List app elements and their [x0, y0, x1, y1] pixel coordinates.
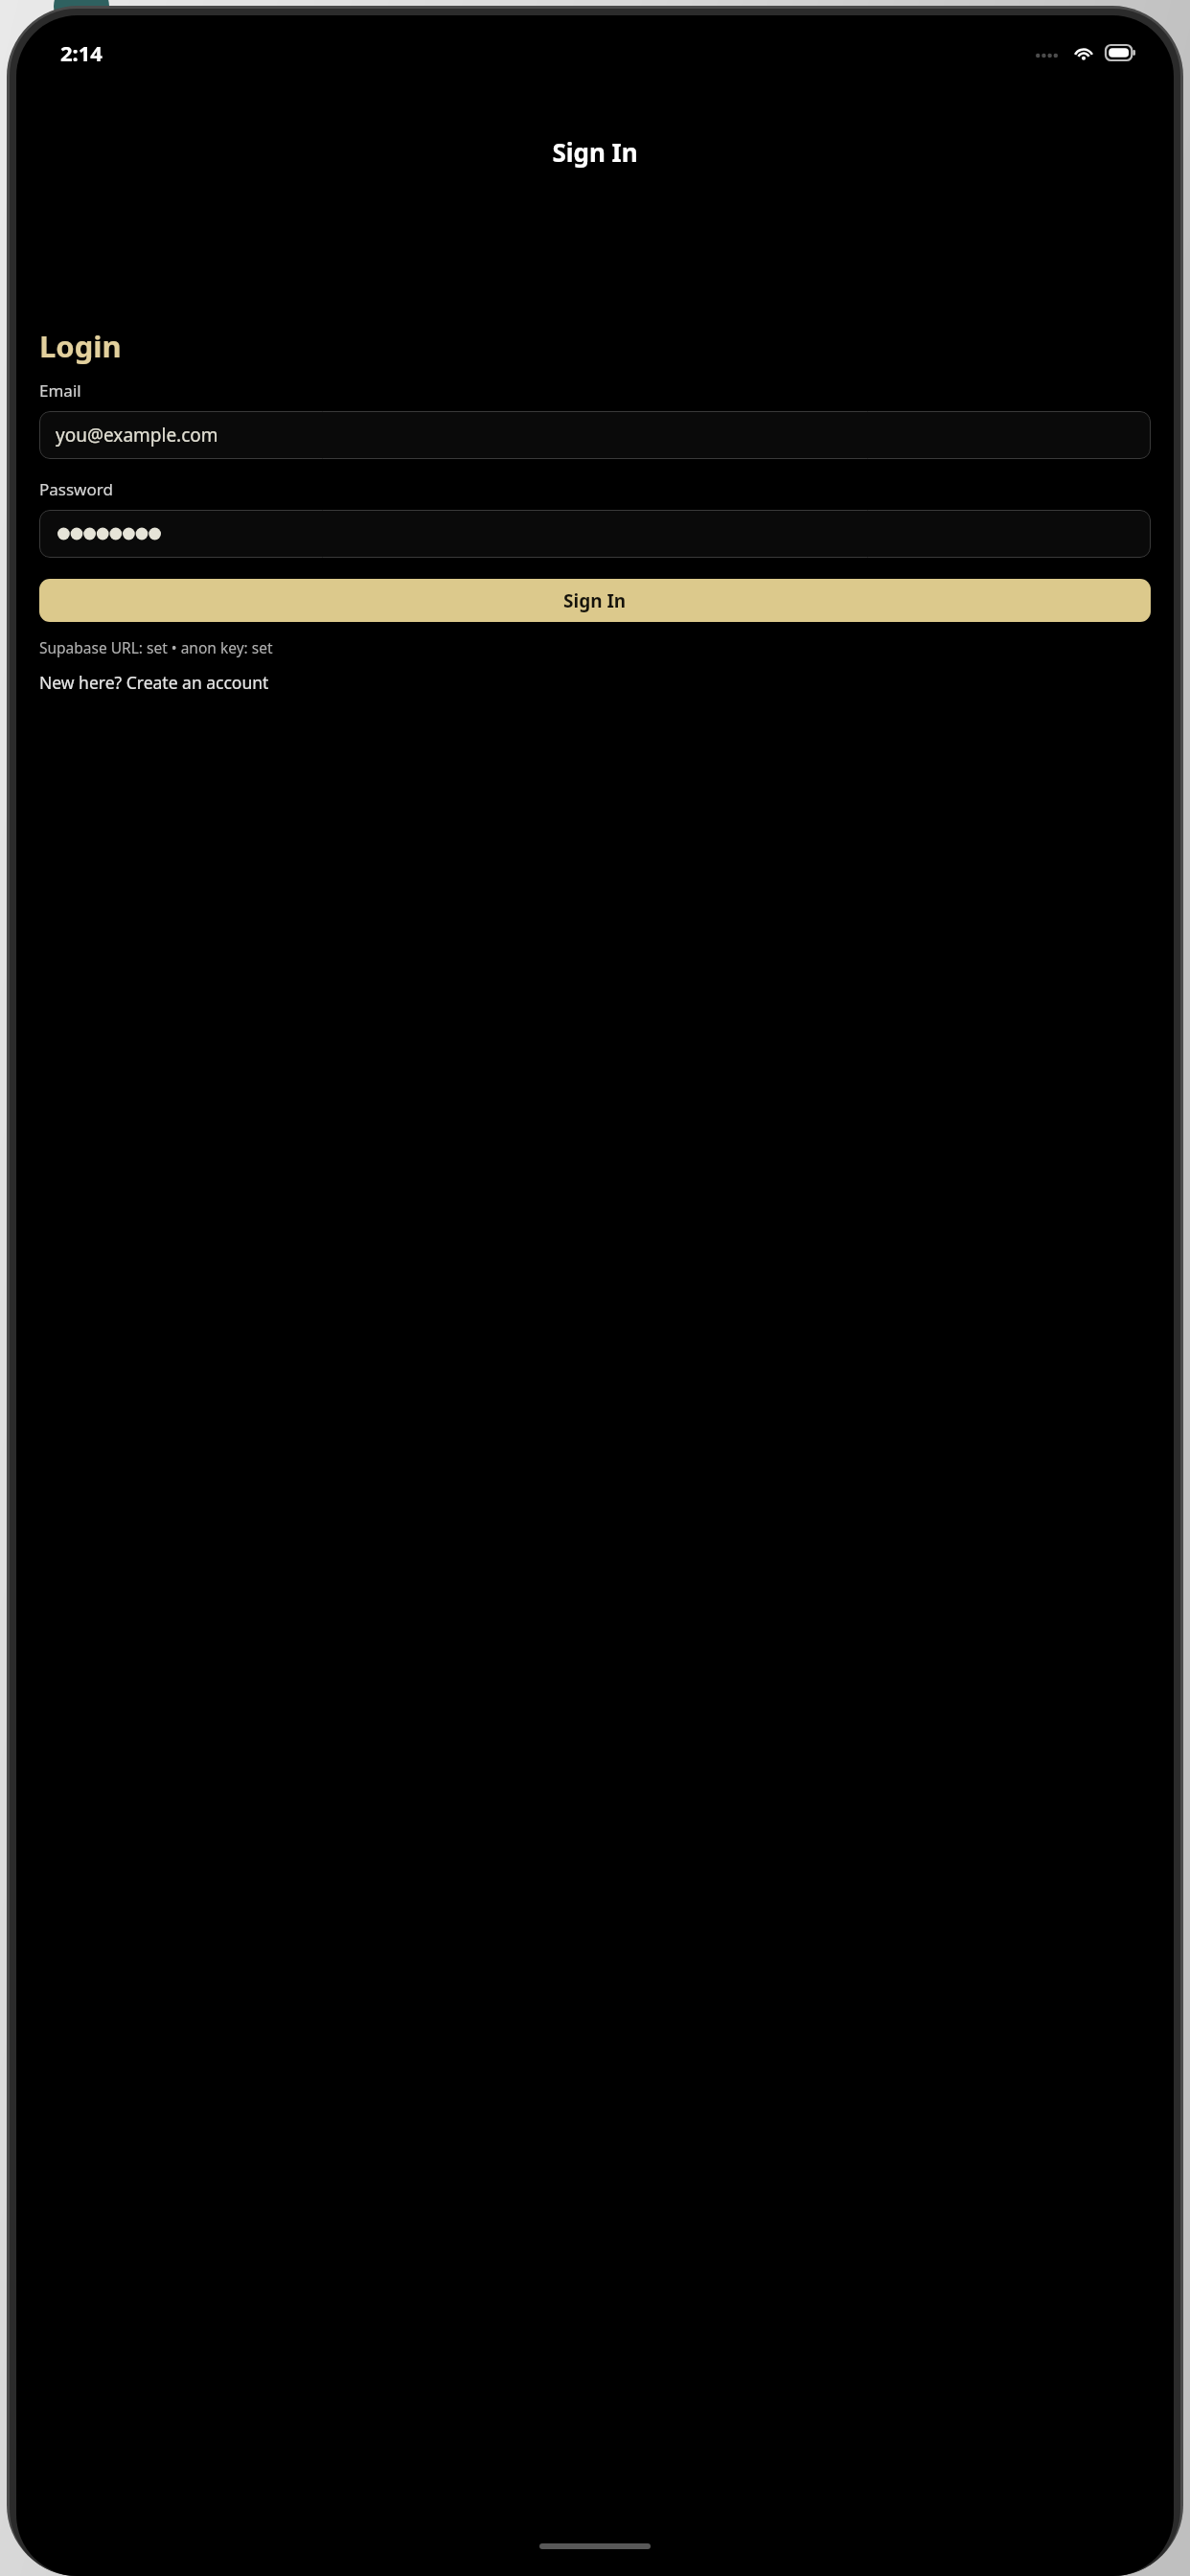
- other: Wi-Fi: [1073, 45, 1094, 60]
- staticText: Supabase URL: set • anon key: set: [39, 637, 273, 657]
- staticText: Password: [39, 478, 113, 500]
- staticText: Email: [39, 379, 81, 402]
- button[interactable]: New here? Create an account: [39, 671, 269, 694]
- staticText: Sign In: [563, 588, 627, 613]
- staticText: New here? Create an account: [39, 671, 269, 694]
- button[interactable]: you@example.com: [39, 411, 1151, 459]
- other: Battery: [1106, 45, 1135, 60]
- button[interactable]: Sign In: [39, 579, 1151, 622]
- button[interactable]: [39, 510, 1151, 558]
- staticText: you@example.com: [56, 423, 218, 448]
- staticText: 2:14: [60, 38, 103, 67]
- staticText: Sign In: [16, 135, 1174, 169]
- staticText: Login: [39, 326, 122, 366]
